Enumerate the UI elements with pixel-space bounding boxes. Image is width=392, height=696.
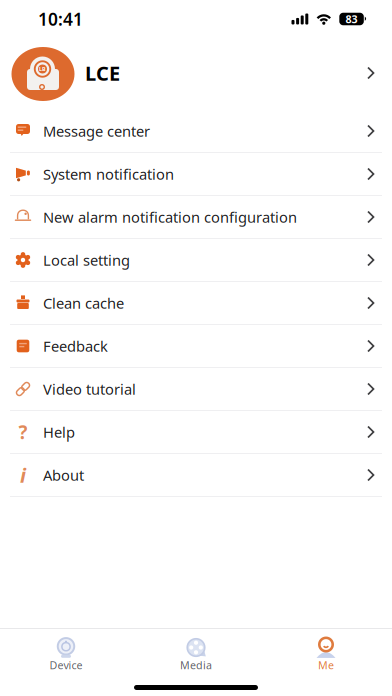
staticText: System notification: [43, 164, 174, 184]
button[interactable]: System notification: [0, 153, 392, 196]
staticText: i: [20, 462, 26, 488]
staticText: Local setting: [43, 250, 130, 270]
button[interactable]: Message center: [0, 110, 392, 153]
button[interactable]: Local setting: [0, 239, 392, 282]
staticText: Media: [180, 658, 212, 672]
staticText: ?: [18, 420, 27, 444]
staticText: Device: [49, 658, 82, 672]
button[interactable]: Feedback: [0, 325, 392, 368]
staticText: Clean cache: [43, 293, 124, 313]
staticText: 83: [346, 12, 358, 26]
button[interactable]: Video tutorial: [0, 368, 392, 411]
button[interactable]: LB: [0, 36, 392, 110]
staticText: New alarm notification configuration: [43, 207, 297, 227]
staticText: LB: [39, 65, 46, 73]
staticText: Video tutorial: [43, 379, 136, 399]
staticText: About: [43, 465, 84, 485]
staticText: 10:41: [38, 7, 83, 30]
button[interactable]: Device: [1, 629, 131, 679]
button[interactable]: Me: [261, 629, 391, 679]
button[interactable]: i: [0, 454, 392, 497]
button[interactable]: Media: [131, 629, 261, 679]
staticText: Help: [43, 422, 75, 442]
staticText: LCE: [85, 60, 120, 86]
button[interactable]: ?: [0, 411, 392, 454]
staticText: Message center: [43, 121, 150, 141]
button[interactable]: Clean cache: [0, 282, 392, 325]
staticText: Me: [318, 658, 334, 672]
button[interactable]: New alarm notification configuration: [0, 196, 392, 239]
staticText: Feedback: [43, 336, 108, 356]
